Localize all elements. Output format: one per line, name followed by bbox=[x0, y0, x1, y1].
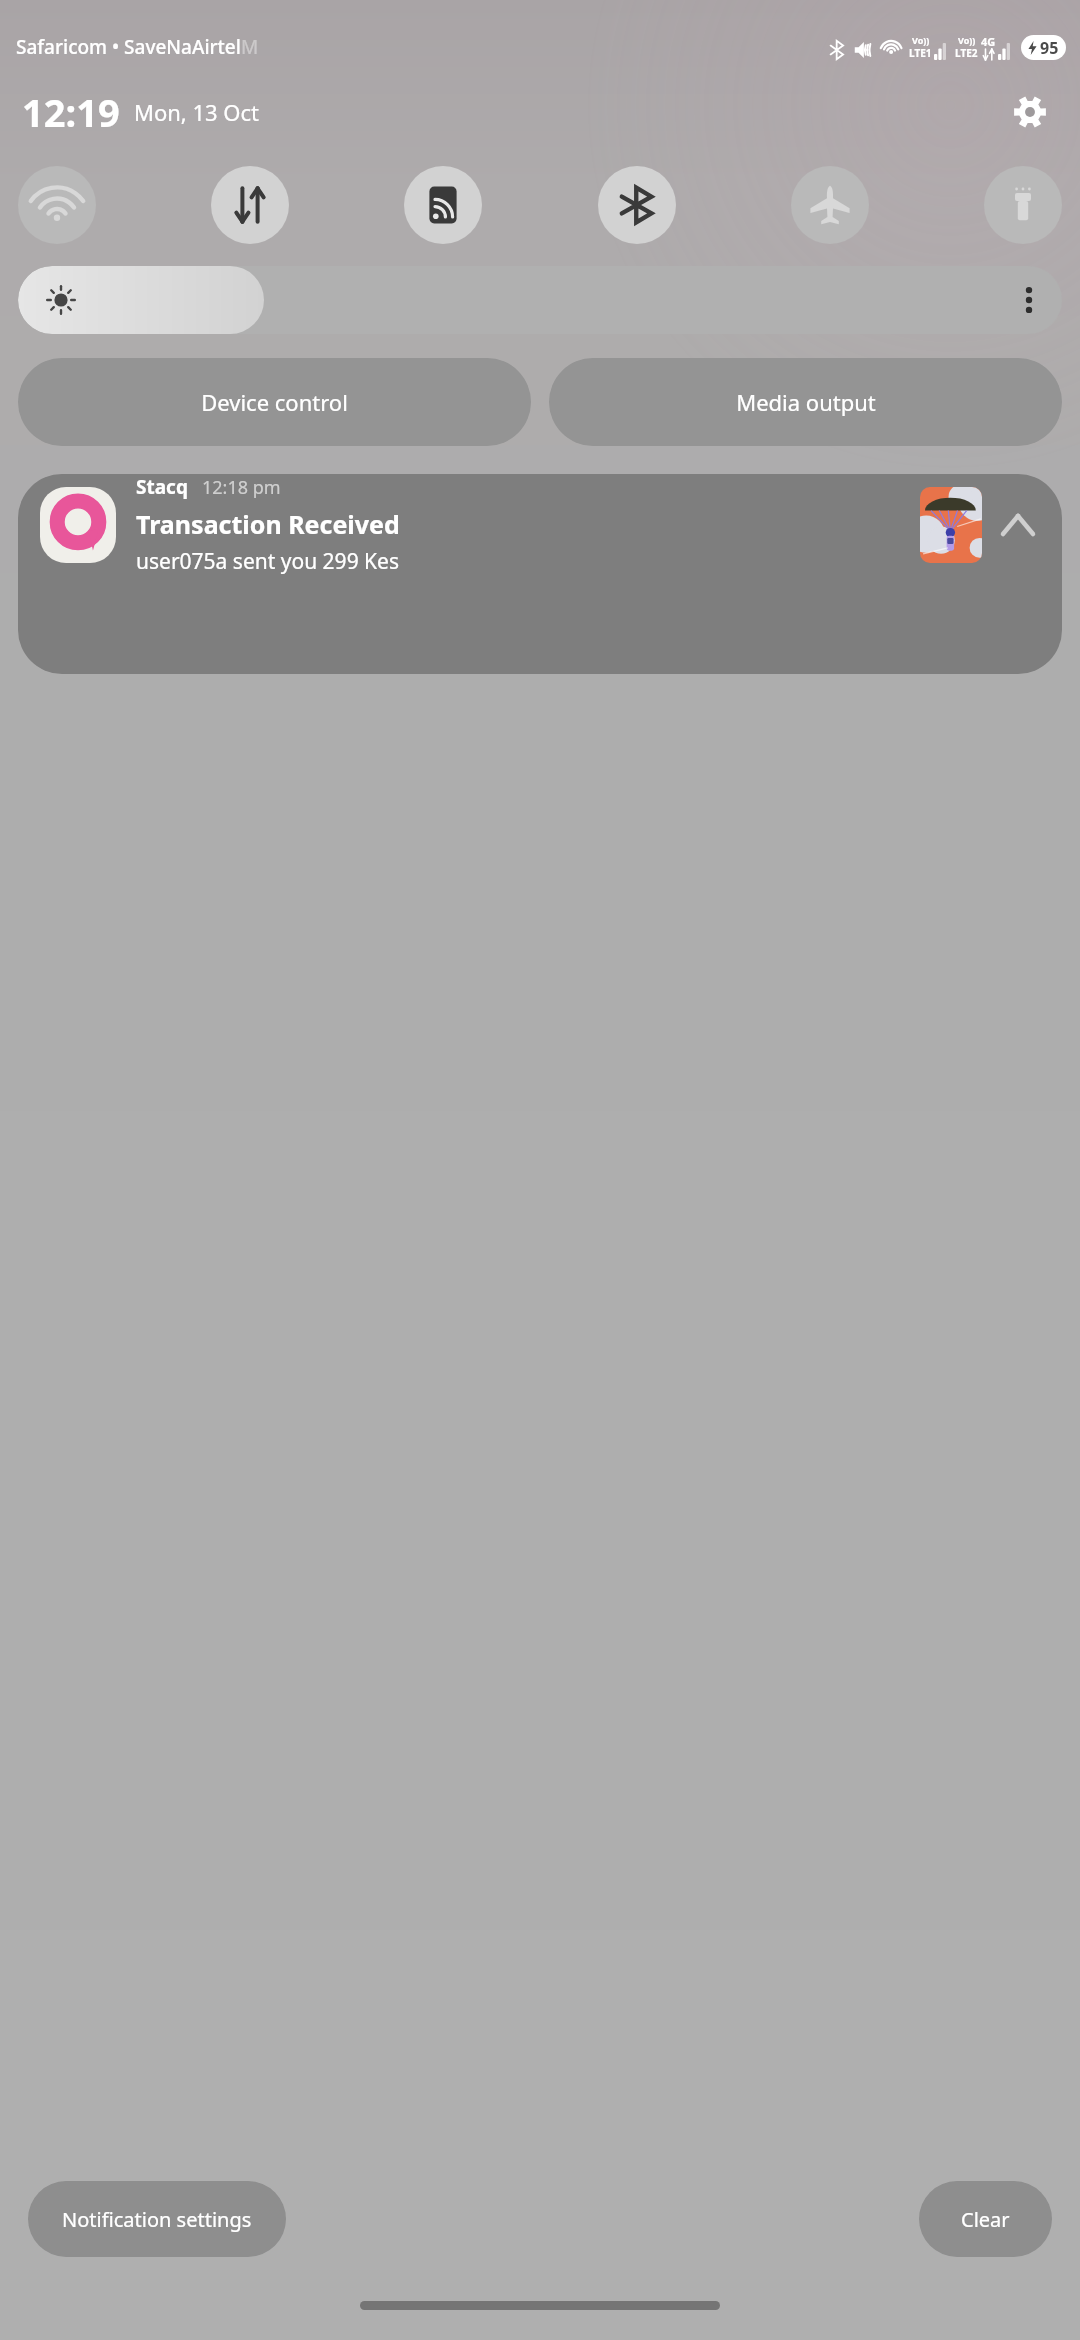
staticText: Device control bbox=[201, 387, 348, 417]
staticText: M bbox=[241, 34, 259, 60]
staticText: user075a sent you 299 Kes bbox=[136, 547, 400, 576]
button[interactable]: Wi-Fi bbox=[18, 166, 96, 244]
button[interactable]: Aeroplane mode bbox=[791, 166, 869, 244]
staticText: Vo)) bbox=[958, 34, 976, 46]
staticText: LTE1 bbox=[909, 46, 932, 60]
button[interactable]: More brightness options bbox=[1016, 287, 1042, 313]
button[interactable]: Stacq bbox=[18, 474, 1062, 674]
staticText: Mon, 13 Oct bbox=[134, 97, 260, 127]
staticText: LTE2 bbox=[955, 46, 978, 60]
button[interactable]: Bluetooth bbox=[598, 166, 676, 244]
button[interactable]: Brightness bbox=[18, 266, 1062, 334]
staticText: Media output bbox=[736, 387, 876, 417]
button[interactable]: Hotspot bbox=[404, 166, 482, 244]
staticText: Vo)) bbox=[912, 34, 930, 46]
button[interactable]: Collapse notification bbox=[996, 503, 1040, 547]
button[interactable]: Clear bbox=[919, 2181, 1052, 2257]
staticText: Transaction Received bbox=[136, 507, 400, 541]
staticText: Safaricom • SaveNaAirtel bbox=[16, 34, 241, 60]
staticText: 4G bbox=[981, 34, 996, 49]
button[interactable]: Device control bbox=[18, 358, 531, 446]
button[interactable]: Notification settings bbox=[28, 2181, 286, 2257]
staticText: 12:19 bbox=[22, 86, 120, 138]
staticText: 95 bbox=[1040, 37, 1059, 59]
button[interactable]: Torch bbox=[984, 166, 1062, 244]
staticText: 12:18 pm bbox=[202, 475, 281, 500]
button[interactable]: Settings bbox=[1006, 88, 1054, 136]
button[interactable]: Mobile data bbox=[211, 166, 289, 244]
staticText: Stacq bbox=[136, 474, 188, 500]
staticText: Notification settings bbox=[62, 2206, 252, 2233]
button[interactable]: Media output bbox=[549, 358, 1062, 446]
staticText: Clear bbox=[961, 2206, 1010, 2233]
